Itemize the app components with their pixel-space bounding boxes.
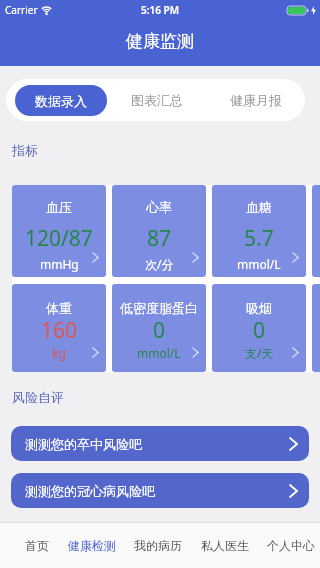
staticText: 87 [147, 224, 172, 253]
button[interactable]: 心率 [112, 185, 206, 277]
staticText: 血糖 [246, 199, 272, 215]
staticText: 血压 [46, 199, 72, 215]
button[interactable]: 测测您的冠心病风险吧 [11, 473, 309, 508]
staticText: 健康月报 [230, 92, 282, 108]
button[interactable]: 吸烟 [212, 284, 306, 372]
button[interactable]: 健康检测 [64, 523, 120, 568]
staticText: 我的病历 [134, 538, 182, 553]
staticText: 吸烟 [246, 300, 272, 316]
staticText: mmHg [40, 256, 79, 272]
button[interactable]: 体脂 [312, 185, 320, 277]
staticText: 数据录入 [35, 93, 87, 109]
button[interactable]: 血压 [12, 185, 106, 277]
staticText: 体重 [46, 300, 72, 316]
staticText: 0 [253, 316, 266, 345]
button[interactable]: 图表汇总 [107, 79, 206, 121]
staticText: 测测您的冠心病风险吧 [25, 483, 155, 499]
staticText: 图表汇总 [131, 92, 183, 108]
staticText: 健康监测 [126, 31, 194, 52]
staticText: 160 [41, 316, 78, 345]
button[interactable]: 数据录入 [15, 85, 107, 116]
staticText: kg [52, 345, 66, 361]
button[interactable]: 个人中心 [263, 523, 319, 568]
button[interactable]: 体重 [12, 284, 106, 372]
staticText: 5.7 [244, 224, 274, 253]
staticText: 0 [153, 316, 166, 345]
staticText: 健康检测 [68, 538, 116, 553]
staticText: mmol/L [237, 256, 281, 272]
button[interactable]: 低密度脂蛋白 [112, 284, 206, 372]
button[interactable]: 私人医生 [197, 523, 253, 568]
staticText: 5:16 PM [141, 3, 179, 17]
staticText: 风险自评 [12, 389, 64, 405]
staticText: 指标 [12, 142, 38, 158]
staticText: 支/天 [245, 345, 274, 361]
button[interactable]: 我的病历 [130, 523, 186, 568]
staticText: 低密度脂蛋白 [120, 300, 198, 316]
staticText: 私人医生 [201, 538, 249, 553]
staticText: mmol/L [137, 345, 181, 361]
button[interactable]: 测测您的卒中风险吧 [11, 426, 309, 461]
button[interactable]: 饮酒 [312, 284, 320, 372]
button[interactable]: 血糖 [212, 185, 306, 277]
button[interactable]: 首页 [21, 523, 53, 568]
staticText: 测测您的卒中风险吧 [25, 436, 142, 452]
staticText: Carrier [5, 3, 38, 17]
staticText: 心率 [146, 199, 172, 215]
staticText: 首页 [25, 538, 49, 553]
staticText: 120/87 [25, 224, 93, 253]
button[interactable]: 健康月报 [206, 79, 305, 121]
staticText: 个人中心 [267, 538, 315, 553]
staticText: 次/分 [145, 256, 174, 272]
